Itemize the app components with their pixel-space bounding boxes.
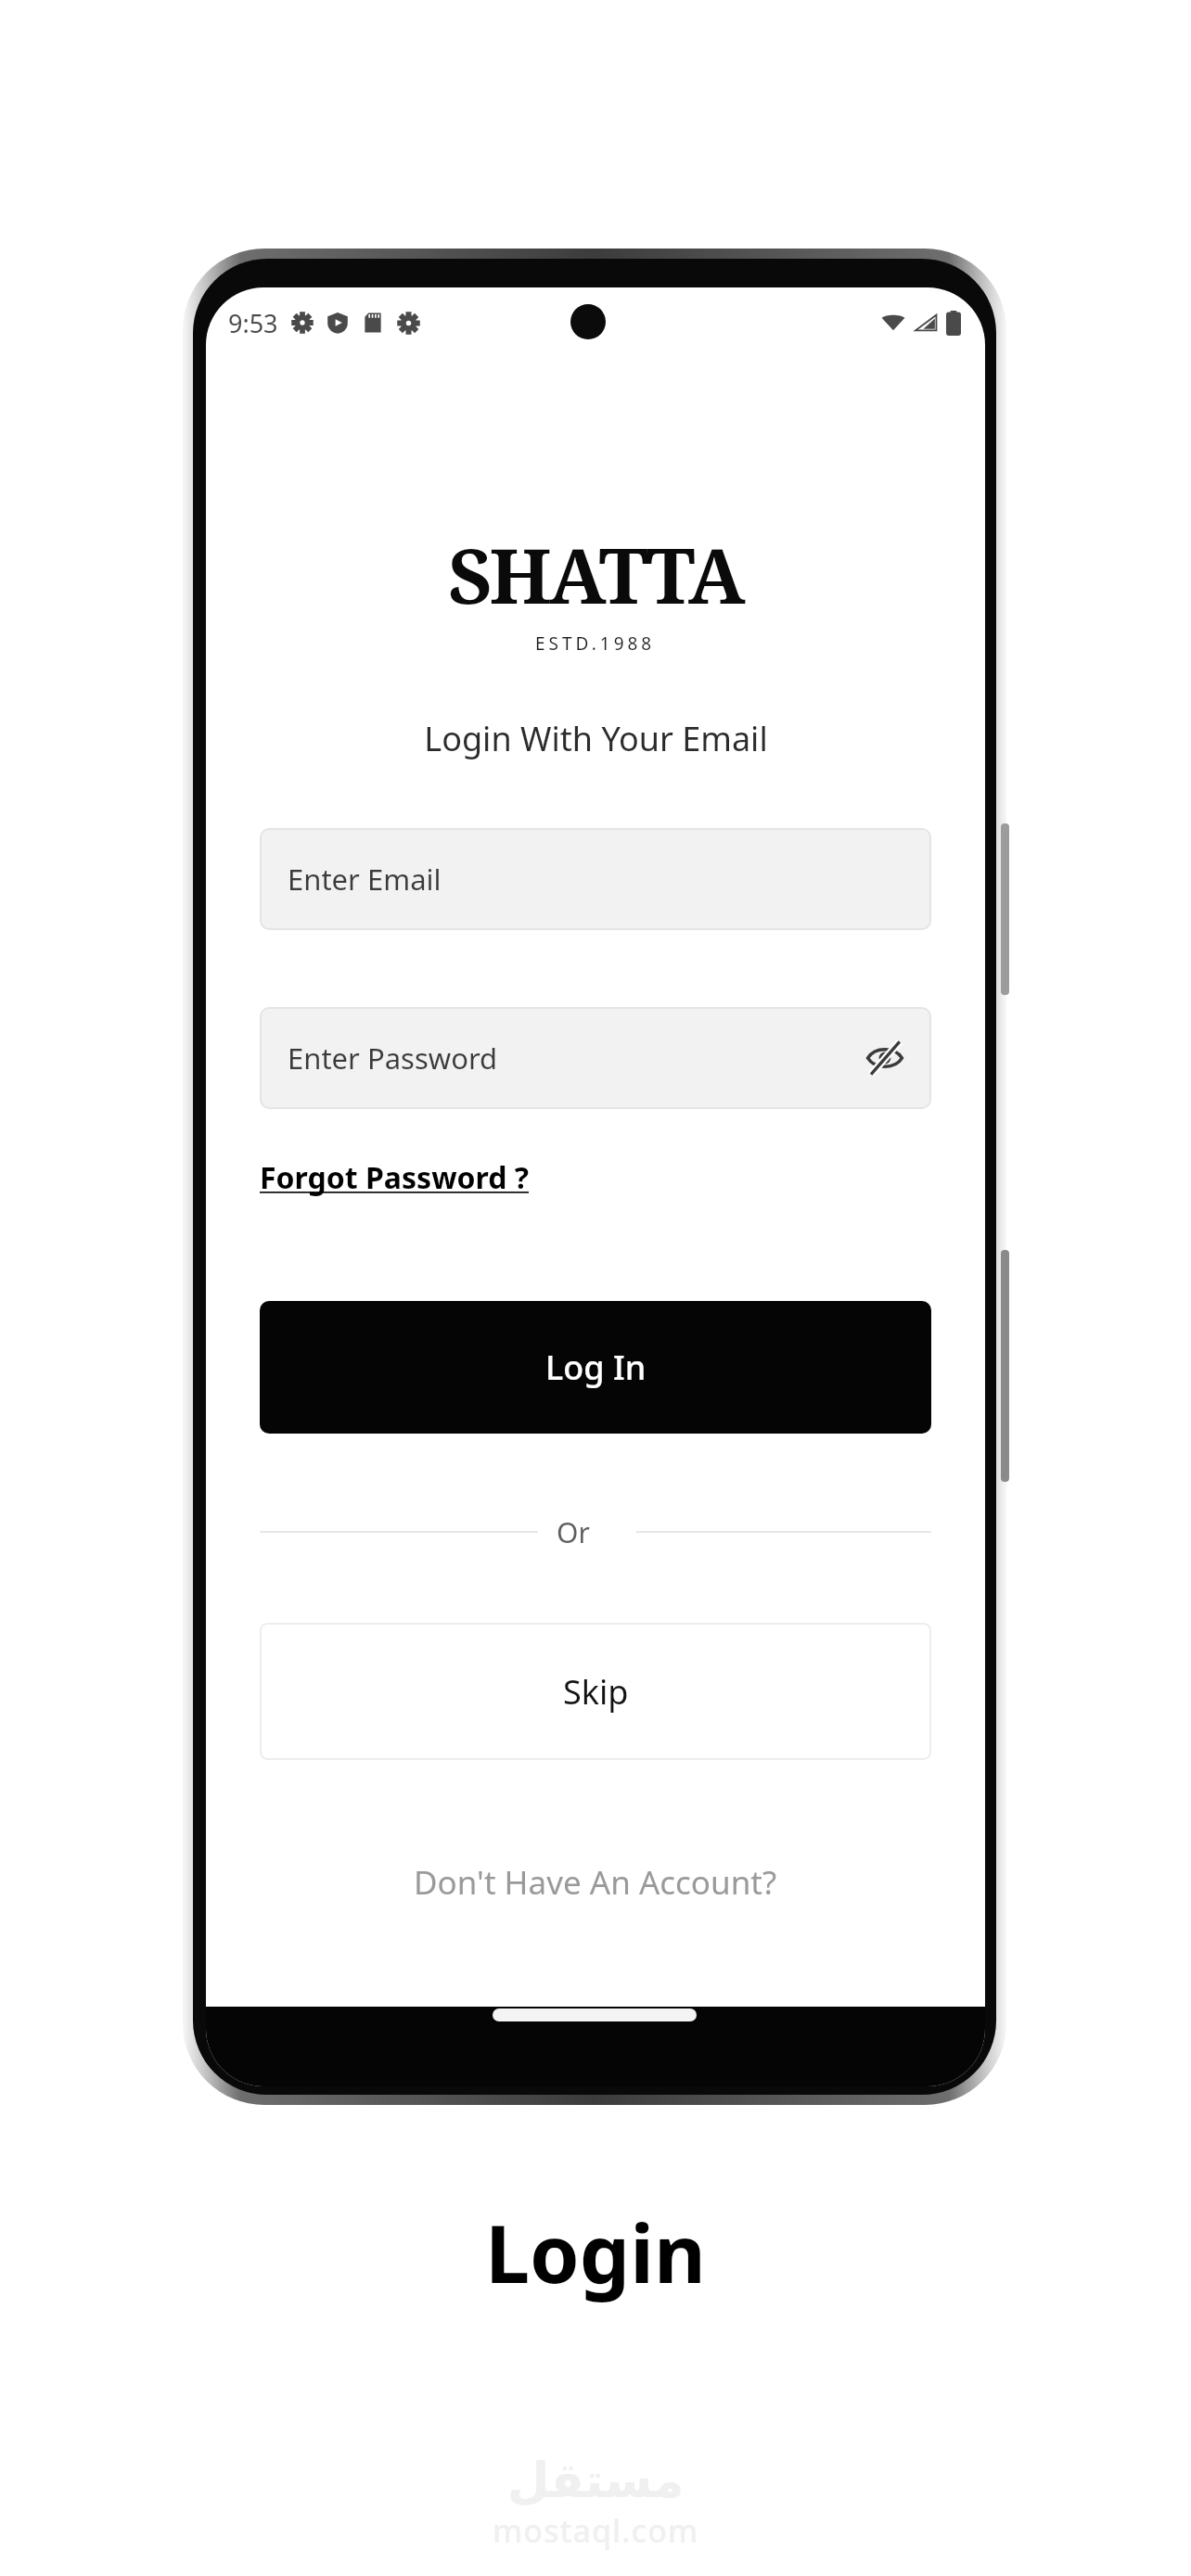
staticText: mostaql.com	[493, 2509, 699, 2552]
staticText: Forgot Password ?	[260, 1157, 530, 1198]
staticText: Or	[557, 1513, 590, 1550]
staticText: ESTD.1988	[535, 631, 656, 656]
staticText: Log In	[545, 1345, 647, 1390]
button[interactable]: Show password	[859, 1032, 911, 1084]
button[interactable]: Enter Password	[260, 1007, 931, 1109]
button[interactable]: Skip	[260, 1623, 931, 1760]
staticText: Don't Have An Account?	[414, 1860, 777, 1905]
staticText: Skip	[563, 1669, 629, 1715]
button[interactable]: Don't Have An Account?	[403, 1855, 788, 1910]
staticText: Enter Email	[288, 860, 442, 899]
staticText: مستقل	[507, 2453, 685, 2509]
button[interactable]: Forgot Password ?	[260, 1154, 530, 1202]
button[interactable]: Log In	[260, 1301, 931, 1434]
staticText: 9:53	[228, 306, 278, 340]
staticText: Login	[485, 2198, 706, 2306]
staticText: Enter Password	[288, 1039, 498, 1078]
staticText: SHATTA	[448, 522, 743, 626]
staticText: Login With Your Email	[424, 716, 768, 761]
button[interactable]: Enter Email	[260, 828, 931, 930]
